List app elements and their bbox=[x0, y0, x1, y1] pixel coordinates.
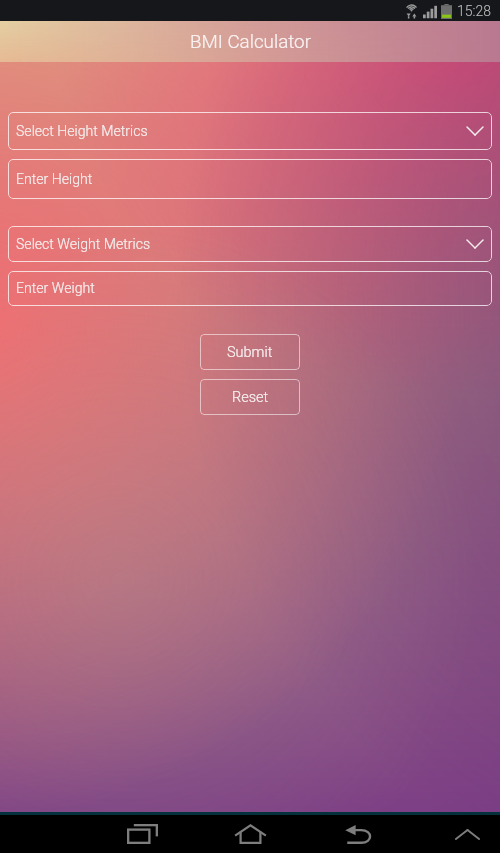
staticText: Enter Height bbox=[16, 171, 93, 188]
staticText: Submit bbox=[227, 344, 273, 361]
staticText: Select Weight Metrics bbox=[16, 236, 151, 253]
staticText: BMI Calculator bbox=[190, 31, 311, 53]
button[interactable]: Submit bbox=[200, 334, 300, 370]
staticText: Enter Weight bbox=[16, 280, 95, 297]
button[interactable]: Enter Weight bbox=[8, 271, 492, 306]
staticText: Select Height Metrics bbox=[16, 123, 148, 140]
staticText: 15:28 bbox=[457, 3, 492, 19]
button[interactable]: Select Height Metrics bbox=[8, 112, 492, 150]
staticText: Reset bbox=[232, 389, 269, 406]
button[interactable]: Select Weight Metrics bbox=[8, 226, 492, 262]
button[interactable]: Reset bbox=[200, 379, 300, 415]
button[interactable]: Home bbox=[196, 815, 304, 853]
button[interactable]: Hide navigation bbox=[413, 815, 500, 853]
button[interactable]: Enter Height bbox=[8, 159, 492, 199]
button[interactable]: Back bbox=[305, 815, 413, 853]
button[interactable]: Recent apps bbox=[88, 815, 196, 853]
